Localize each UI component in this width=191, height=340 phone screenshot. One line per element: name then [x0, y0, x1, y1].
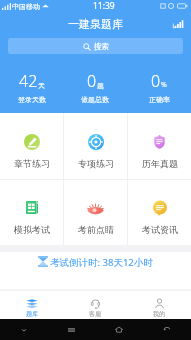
button[interactable]: 考试资讯 — [128, 180, 191, 245]
staticText: 登录天数 — [18, 95, 46, 104]
button[interactable]: 客服 — [63, 291, 127, 319]
staticText: 做题总数 — [81, 95, 109, 104]
staticText: 我的 — [153, 310, 165, 318]
staticText: % — [161, 80, 167, 90]
button[interactable]: 题库 — [0, 291, 63, 319]
staticText: 一建泉题库 — [68, 17, 123, 31]
staticText: 历年真题 — [142, 158, 178, 169]
button[interactable]: 章节练习 — [0, 113, 63, 179]
staticText: 模拟考试 — [14, 224, 50, 235]
staticText: 考试倒计时: 38天12小时 — [50, 256, 153, 269]
staticText: 0 — [151, 70, 161, 92]
staticText: 42 — [19, 70, 38, 92]
button[interactable]: 搜索 — [8, 38, 183, 54]
staticText: 题 — [97, 81, 104, 90]
staticText: 中国移动 — [12, 2, 40, 11]
button[interactable]: 42 — [0, 63, 63, 110]
button[interactable]: Statistics — [173, 20, 184, 28]
button[interactable]: 0 — [127, 63, 191, 110]
staticText: 正确率 — [149, 95, 170, 104]
staticText: 11:39 — [93, 0, 115, 12]
button[interactable]: 考前点睛 — [64, 180, 127, 245]
button[interactable]: 专项练习 — [64, 113, 127, 179]
staticText: 题库 — [26, 310, 38, 318]
staticText: 考前点睛 — [78, 224, 114, 235]
staticText: 考试资讯 — [142, 224, 178, 235]
button[interactable]: 历年真题 — [128, 113, 191, 179]
staticText: 章节练习 — [14, 158, 50, 169]
button[interactable]: 0 — [63, 63, 127, 110]
staticText: 0 — [87, 70, 97, 92]
staticText: 天 — [38, 81, 45, 90]
button[interactable]: 模拟考试 — [0, 180, 63, 245]
staticText: 专项练习 — [78, 158, 114, 169]
button[interactable]: 我的 — [127, 291, 191, 319]
staticText: 客服 — [89, 310, 101, 318]
staticText: 搜索 — [94, 42, 109, 51]
